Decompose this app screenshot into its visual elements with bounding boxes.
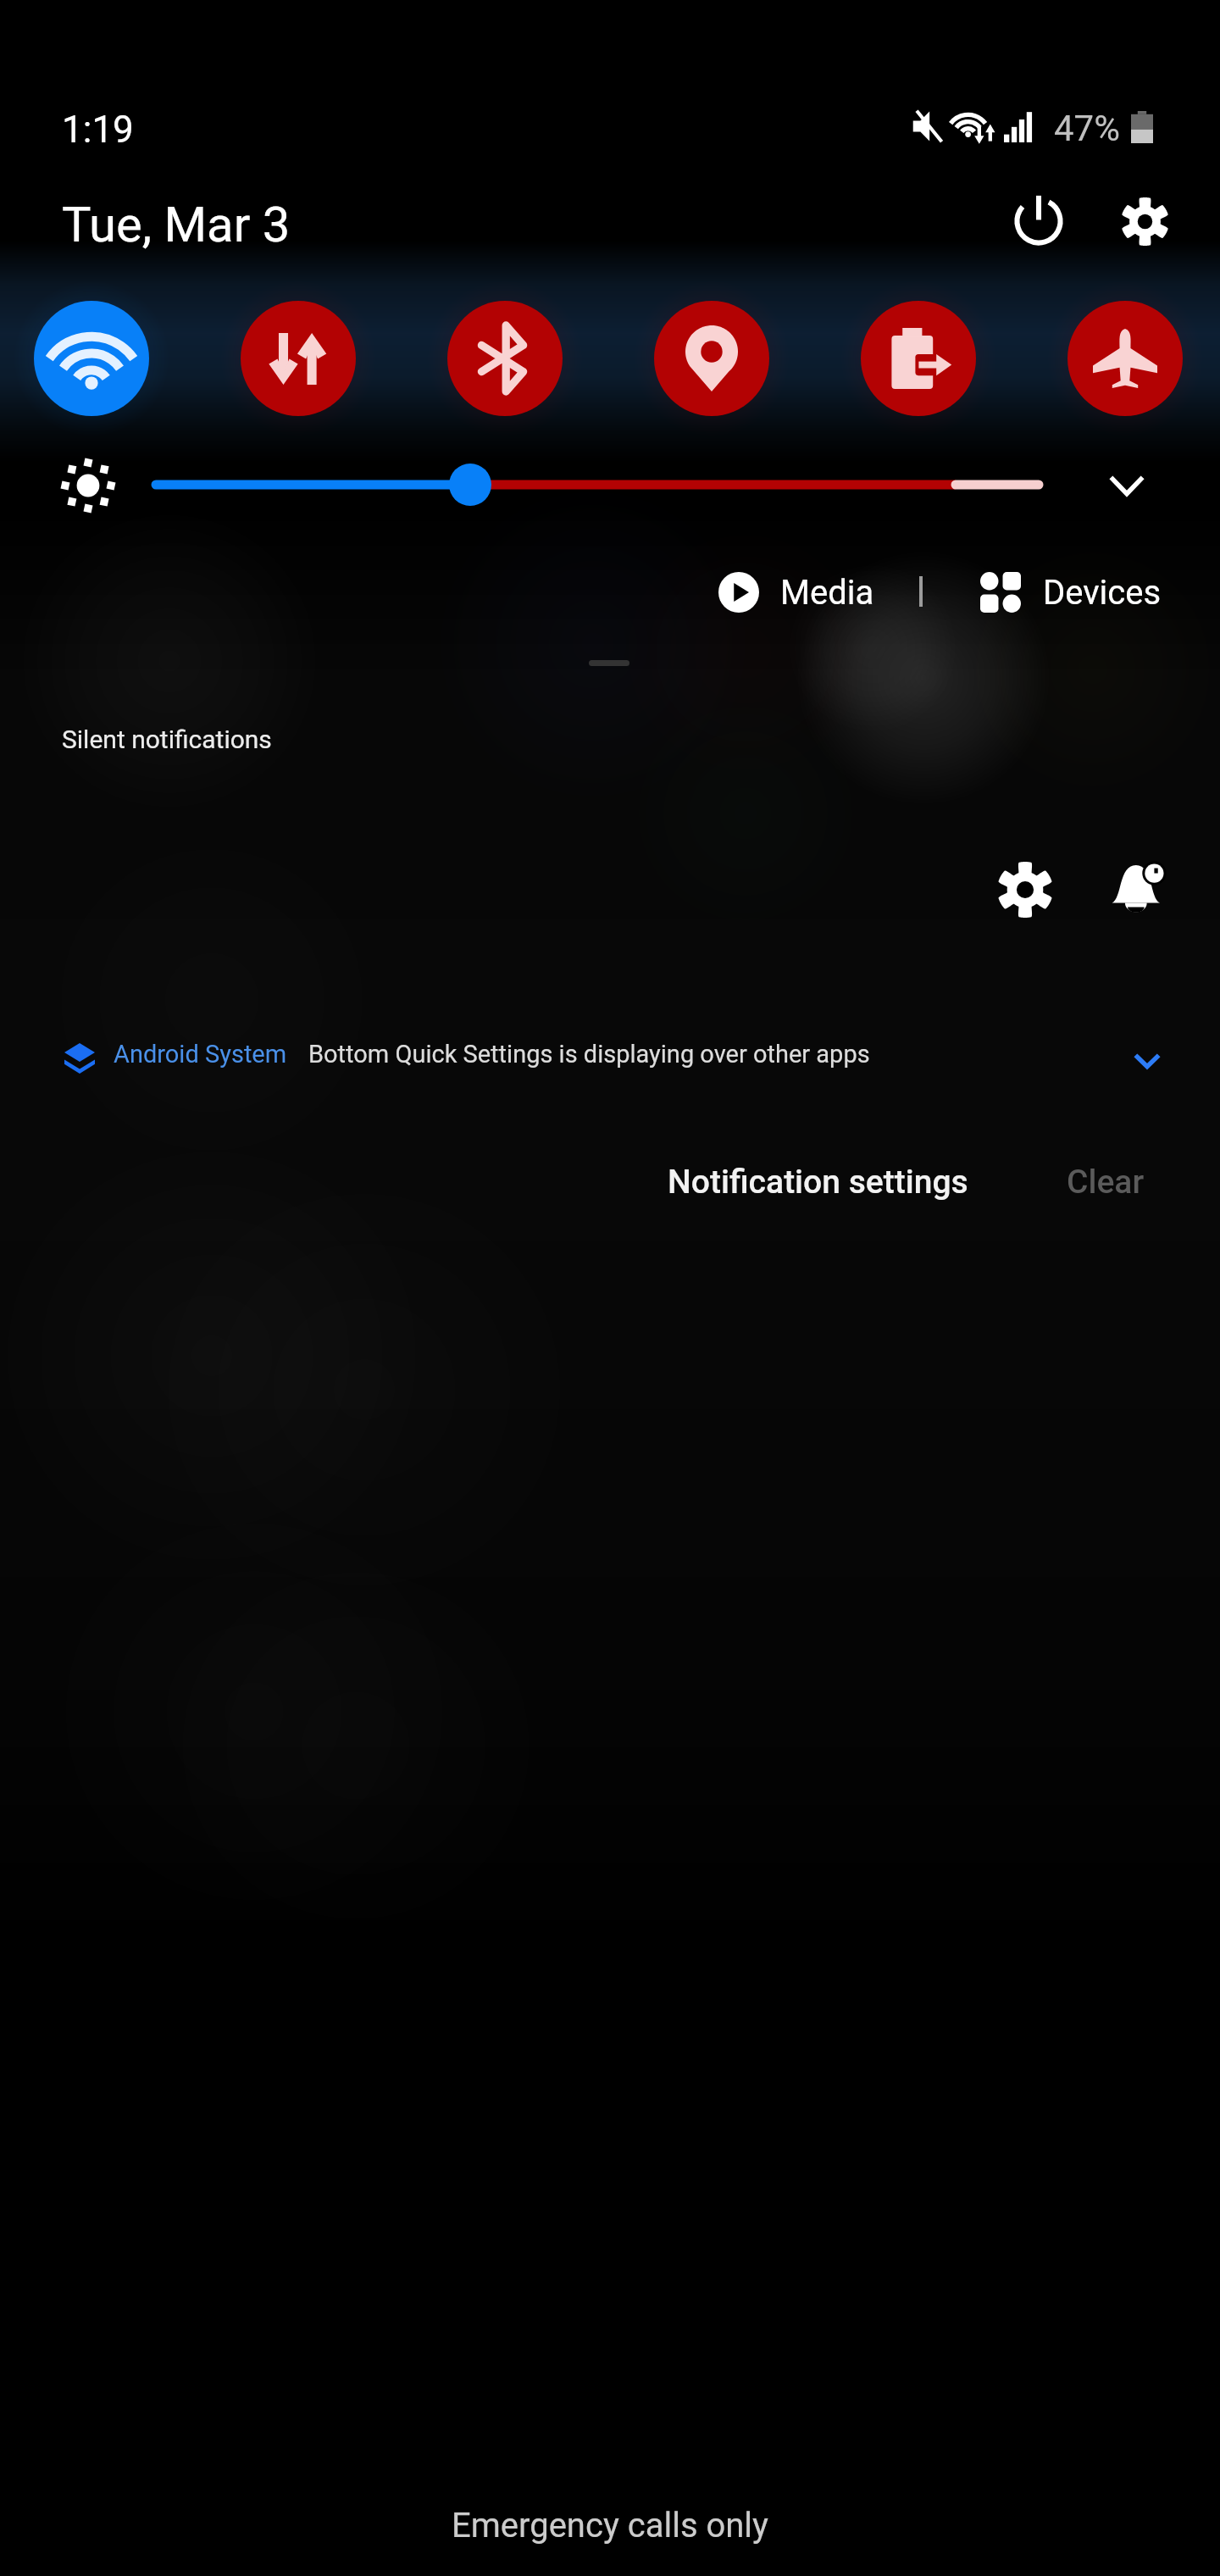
staticText: Tue, Mar 3 [62,196,291,253]
staticText: Android System [114,1040,287,1069]
button[interactable]: Media [718,568,874,617]
staticText: Emergency calls only [0,2506,1220,2545]
staticText: Notification settings [668,1163,968,1202]
staticText: Silent notifications [62,724,272,754]
button[interactable]: Brightness [136,463,1063,507]
button[interactable]: Notification settings [974,839,1076,941]
staticText: Bottom Quick Settings is displaying over… [308,1040,870,1069]
staticText: 1:19 [62,108,134,152]
button[interactable]: Snooze notifications [1089,839,1190,941]
staticText: 47% [1054,108,1120,149]
button[interactable]: Power [988,170,1090,272]
button[interactable]: Clear [1021,1135,1190,1229]
button[interactable]: Notification settings [640,1135,995,1229]
staticText: Devices [1043,573,1162,613]
button[interactable]: Devices [980,568,1162,617]
button[interactable]: Location [654,301,769,416]
button[interactable]: Wi-Fi [34,301,149,416]
staticText: Media [780,573,874,613]
button[interactable]: Mobile data [241,301,356,416]
button[interactable]: Settings [1094,170,1195,272]
staticText: Clear [1067,1163,1145,1202]
button[interactable]: Android System [0,1020,1220,1108]
button[interactable]: Power sharing [861,301,976,416]
button[interactable]: Airplane mode [1067,301,1183,416]
button[interactable]: Bluetooth [447,301,563,416]
button[interactable]: Expand quick settings [1076,436,1178,537]
